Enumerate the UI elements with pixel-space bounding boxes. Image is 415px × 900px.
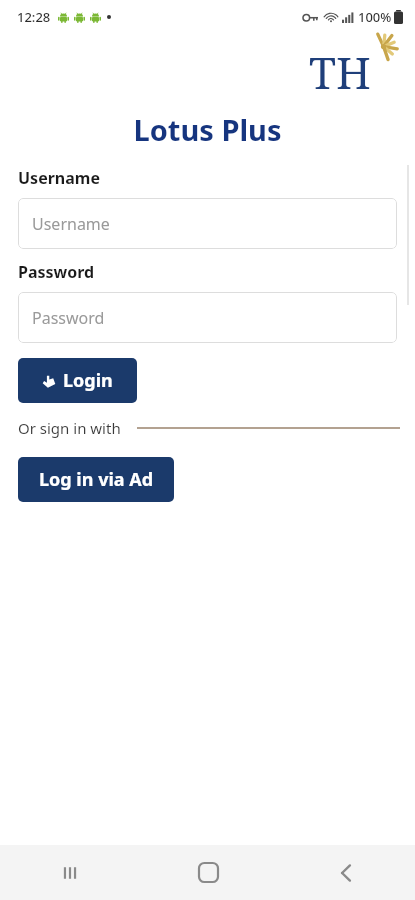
staticText: TH	[309, 42, 371, 100]
button[interactable]: Log in via Ad	[18, 457, 174, 502]
staticText: Username	[32, 213, 110, 235]
button[interactable]: Back	[277, 845, 415, 900]
staticText: Or sign in with	[18, 418, 121, 438]
button[interactable]: Login	[18, 358, 137, 403]
button[interactable]: Home	[139, 845, 277, 900]
button[interactable]: Username	[18, 198, 397, 249]
staticText: Login	[63, 368, 113, 393]
staticText: Username	[18, 167, 100, 189]
staticText: Lotus Plus	[0, 110, 415, 149]
staticText: Password	[18, 261, 95, 283]
staticText: 12:28	[17, 8, 51, 26]
button[interactable]: Recent apps	[0, 845, 139, 900]
staticText: 100%	[358, 8, 392, 26]
staticText: Log in via Ad	[39, 467, 154, 492]
button[interactable]: Password	[18, 292, 397, 343]
staticText: Password	[32, 307, 105, 329]
